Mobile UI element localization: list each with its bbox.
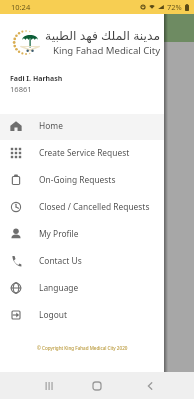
staticText: Home	[39, 120, 63, 131]
staticText: On-Going Requests	[39, 174, 116, 185]
staticText: Create Service Request	[39, 147, 130, 158]
button[interactable]: Logout	[0, 301, 164, 328]
staticText: Fadi I. Harhash	[10, 74, 63, 84]
staticText: © Copyright King Fahad Medical City 2020	[37, 345, 128, 351]
staticText: Language	[39, 282, 79, 293]
staticText: Contact Us	[39, 255, 82, 266]
staticText: مدينة الملك فهد الطبية	[45, 27, 161, 44]
button[interactable]: Create Service Request	[0, 139, 164, 166]
button[interactable]: Back	[142, 378, 158, 394]
button[interactable]: Contact Us	[0, 247, 164, 274]
button[interactable]: On-Going Requests	[0, 166, 164, 193]
button[interactable]: Home	[0, 112, 164, 139]
button[interactable]: Language	[0, 274, 164, 301]
button[interactable]: Recents	[41, 378, 57, 394]
button[interactable]: Home	[89, 378, 105, 394]
staticText: 10:24	[11, 2, 31, 12]
staticText: 16861	[10, 84, 32, 94]
staticText: 72%	[167, 2, 182, 12]
staticText: Closed / Cancelled Requests	[39, 201, 150, 212]
staticText: King Fahad Medical City	[53, 44, 161, 57]
staticText: Logout	[39, 309, 67, 320]
button[interactable]: My Profile	[0, 220, 164, 247]
button[interactable]: Closed / Cancelled Requests	[0, 193, 164, 220]
staticText: My Profile	[39, 228, 79, 239]
